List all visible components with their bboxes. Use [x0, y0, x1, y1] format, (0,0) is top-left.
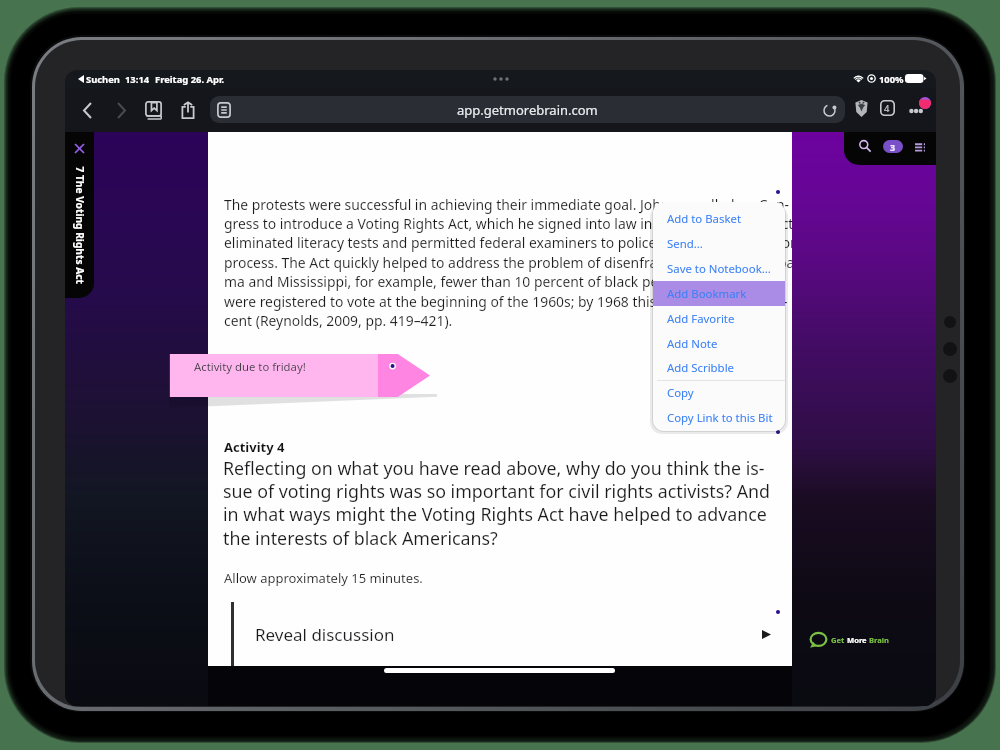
button[interactable]: Copy	[653, 380, 785, 405]
button[interactable]: Tabs	[875, 96, 899, 120]
button[interactable]: Share	[174, 96, 202, 124]
button[interactable]: Reload	[817, 98, 841, 122]
button[interactable]: Add Note	[653, 331, 785, 356]
staticText: Add Favorite	[667, 311, 735, 327]
button[interactable]: Save to Notebook...	[653, 256, 785, 281]
other: Close chapter	[75, 144, 84, 153]
button[interactable]	[65, 132, 94, 298]
button[interactable]: Add Bookmark	[653, 281, 785, 306]
staticText: Get	[831, 635, 845, 645]
button[interactable]: Activity due to friday!	[169, 354, 378, 397]
button[interactable]	[210, 96, 845, 123]
staticText: process. The Act quickly helped to addre…	[224, 253, 792, 272]
staticText: Copy	[667, 385, 694, 401]
staticText: 7 The Voting Rights Act	[72, 166, 86, 284]
staticText: app.getmorebrain.com	[457, 101, 598, 119]
staticText: the interests of black Americans?	[223, 526, 498, 550]
button[interactable]: More options	[903, 96, 931, 124]
button[interactable]: Brave Shields	[849, 96, 873, 120]
button[interactable]: Reveal discussion	[234, 602, 792, 666]
button[interactable]: Bookmarks	[139, 96, 167, 124]
button[interactable]: Add to Basket	[653, 206, 785, 231]
button[interactable]: Copy Link to this Bit	[653, 405, 785, 430]
staticText: cent (Reynolds, 2009, pp. 419–421).	[224, 311, 453, 330]
staticText: gress to introduce a Voting Rights Act, …	[224, 214, 792, 233]
staticText: Add to Basket	[667, 211, 742, 227]
staticText: Add Scribble	[667, 360, 734, 376]
staticText: 3	[890, 141, 896, 153]
staticText: Reflecting on what you have read above, …	[223, 456, 765, 480]
button[interactable]: Send...	[653, 231, 785, 256]
button[interactable]: Add Scribble	[653, 355, 785, 380]
staticText: 100%	[879, 73, 904, 86]
button[interactable]: Forward	[107, 96, 135, 124]
button[interactable]: Back	[73, 96, 101, 124]
staticText: Reveal discussion	[255, 623, 395, 646]
staticText: were registered to vote at the beginning…	[224, 292, 788, 311]
staticText: Add Bookmark	[667, 286, 747, 302]
staticText: Activity due to friday!	[194, 359, 306, 374]
staticText: sue of voting rights was so important fo…	[223, 479, 770, 503]
staticText: Activity 4	[224, 438, 285, 456]
button[interactable]: 3	[883, 140, 903, 153]
staticText: eliminated literacy tests and permitted …	[224, 233, 792, 252]
staticText: 4	[884, 102, 890, 115]
staticText: Allow approximately 15 minutes.	[224, 569, 423, 587]
staticText: Copy Link to this Bit	[667, 410, 773, 426]
staticText: ma and Mississippi, for example, fewer t…	[224, 272, 777, 291]
staticText: More	[845, 635, 867, 645]
staticText: Brain	[867, 635, 890, 645]
staticText: Send...	[667, 236, 703, 252]
staticText: Suchen	[86, 73, 120, 86]
button[interactable]: Add Favorite	[653, 306, 785, 331]
button[interactable]: Search	[856, 137, 874, 155]
staticText: in what ways might the Voting Rights Act…	[223, 502, 767, 526]
staticText: The protests were successful in achievin…	[224, 195, 790, 214]
button[interactable]: Table of contents	[911, 138, 929, 156]
staticText: Freitag 26. Apr.	[155, 73, 225, 86]
staticText: Save to Notebook...	[667, 261, 771, 277]
staticText: 13:14	[125, 73, 150, 86]
staticText: Add Note	[667, 336, 718, 352]
